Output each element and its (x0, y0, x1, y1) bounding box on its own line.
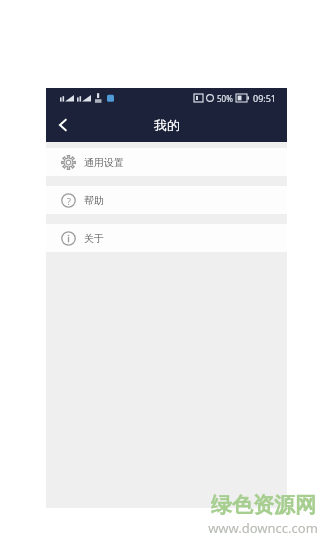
staticText: 09:51 (253, 92, 277, 104)
button[interactable]: 通用设置 (46, 148, 287, 176)
staticText: 关于 (84, 232, 104, 245)
button[interactable]: 关于 (46, 224, 287, 252)
staticText: 通用设置 (84, 156, 124, 169)
button[interactable]: ? (46, 186, 287, 214)
staticText: 50% (217, 93, 233, 104)
staticText: 帮助 (84, 194, 104, 207)
staticText: 我的 (154, 117, 180, 133)
staticText: ? (67, 195, 71, 207)
button[interactable]: Back (46, 108, 80, 142)
staticText: 绿色资源网 (211, 492, 316, 518)
staticText: www.downcc.com (208, 519, 318, 537)
